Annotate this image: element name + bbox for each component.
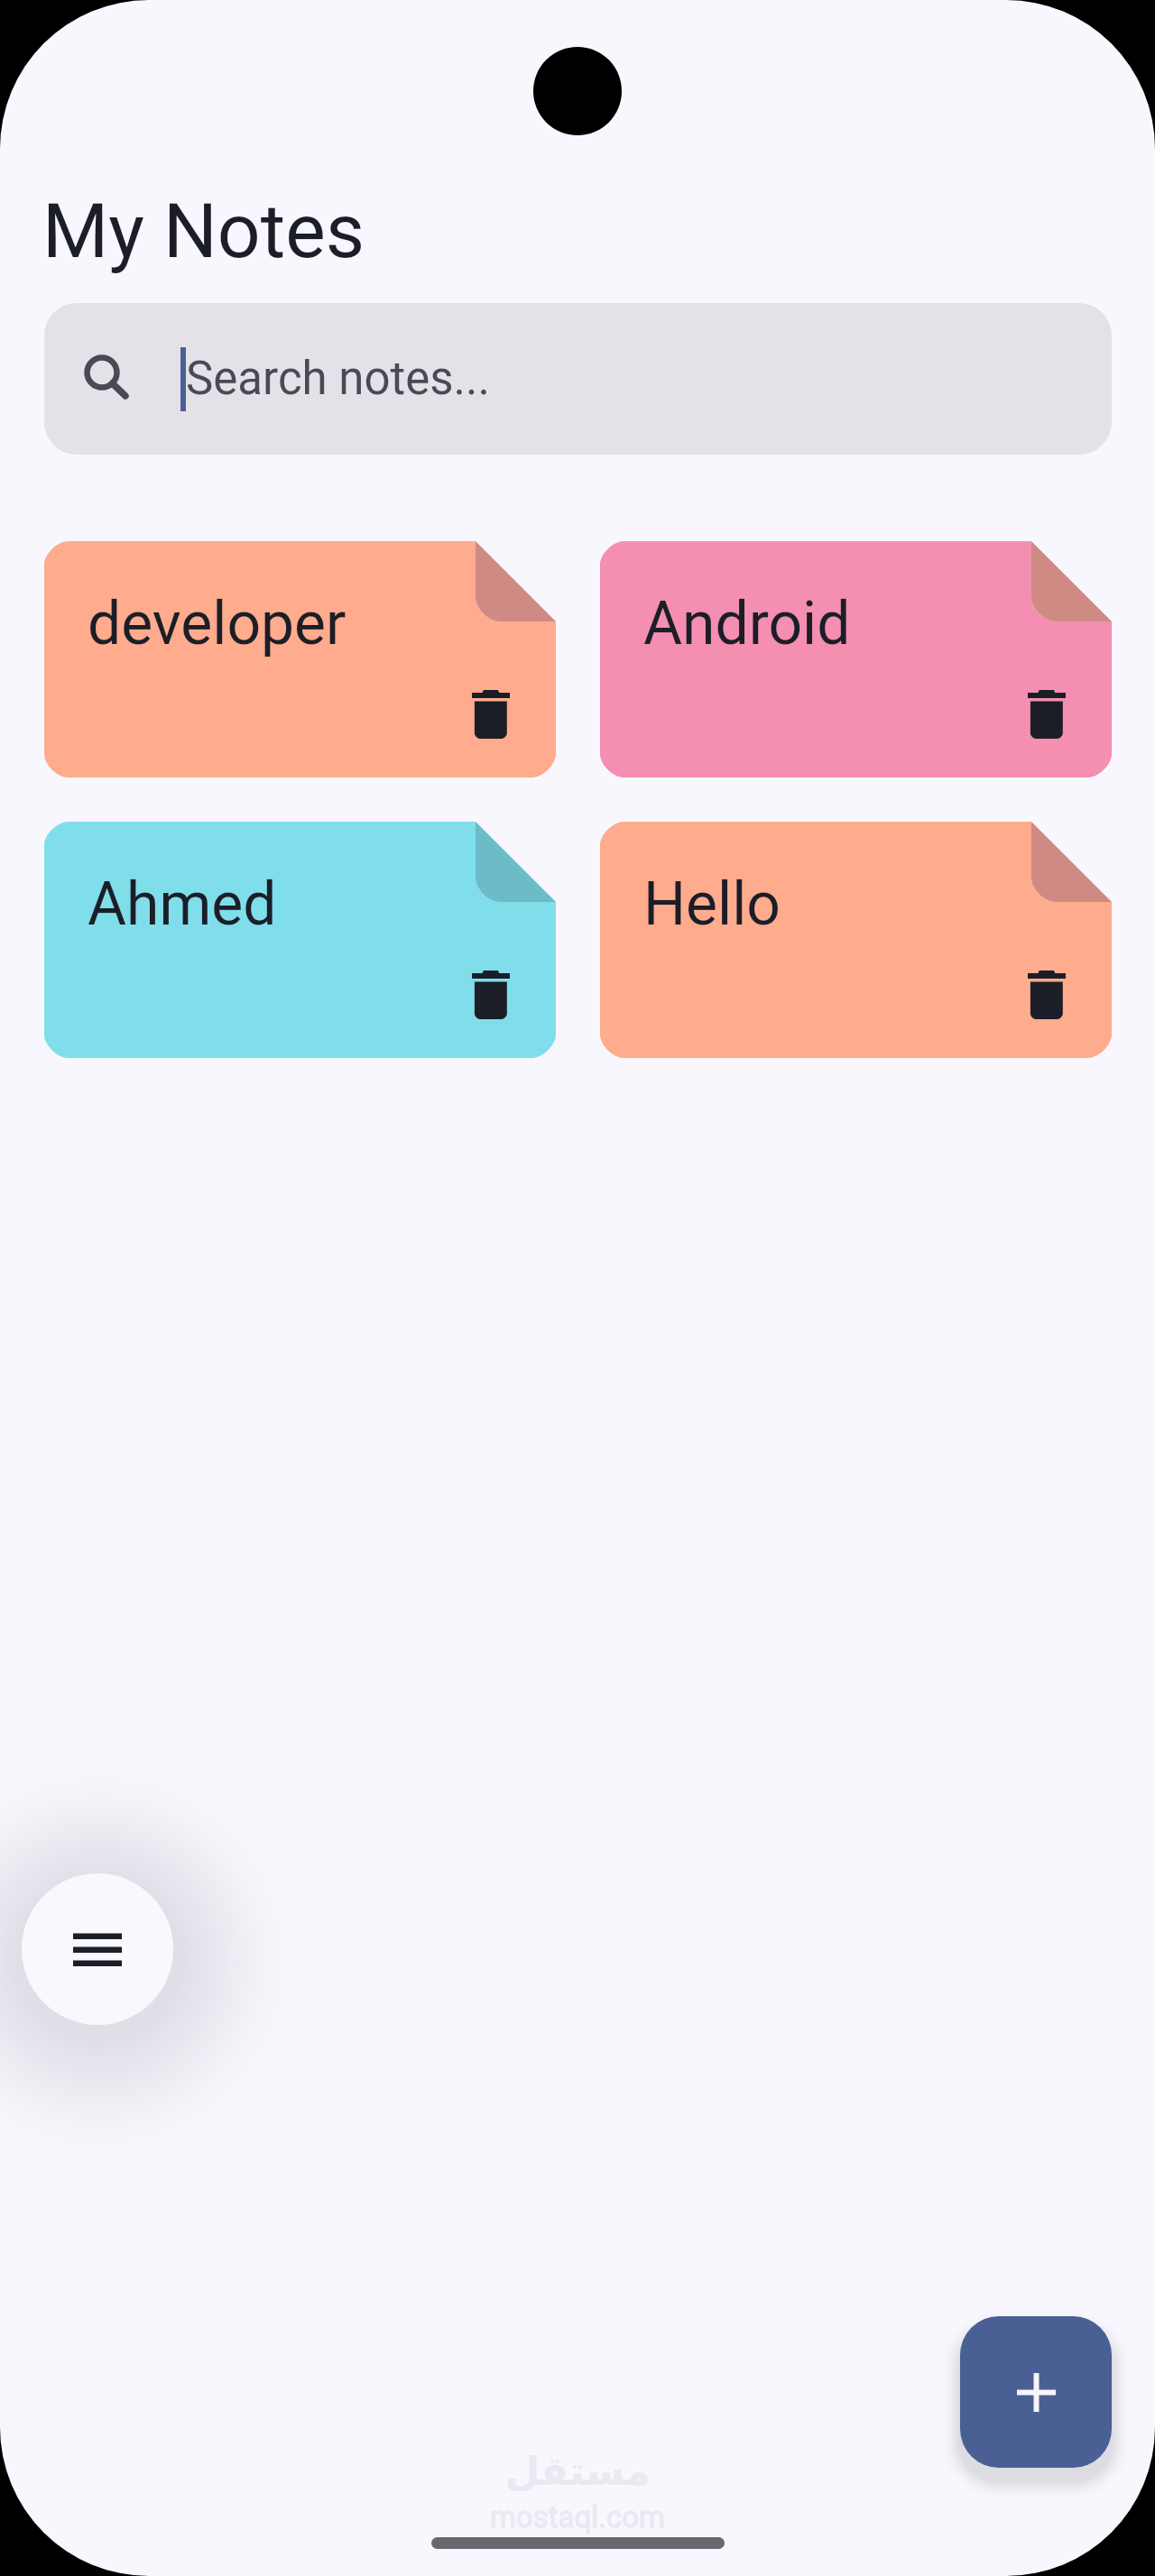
button[interactable]: developer <box>44 541 556 777</box>
button[interactable]: Add note <box>960 2316 1112 2468</box>
staticText: Ahmed <box>88 869 277 939</box>
button[interactable]: Android <box>600 541 1112 777</box>
button[interactable]: Delete note <box>1028 690 1066 739</box>
button[interactable]: Delete note <box>472 971 510 1019</box>
staticText: مستقل <box>505 2448 651 2494</box>
staticText: Android <box>643 589 851 658</box>
button[interactable]: Menu <box>22 1873 173 2025</box>
button[interactable]: Hello <box>600 822 1112 1058</box>
button[interactable]: Delete note <box>472 690 510 739</box>
staticText: developer <box>88 589 346 658</box>
staticText: mostaql.com <box>490 2499 666 2535</box>
staticText: Hello <box>643 869 781 939</box>
button[interactable]: Ahmed <box>44 822 556 1058</box>
staticText: My Notes <box>42 187 365 275</box>
button[interactable]: Search notes... <box>44 303 1112 455</box>
button[interactable]: Delete note <box>1028 971 1066 1019</box>
staticText: Search notes... <box>186 352 490 406</box>
